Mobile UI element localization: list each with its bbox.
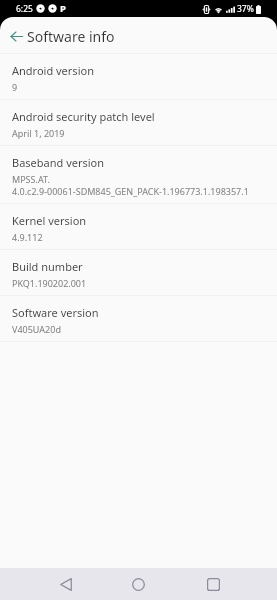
- button[interactable]: Back: [48, 568, 83, 600]
- staticText: 37%: [237, 3, 254, 15]
- staticText: Android version: [12, 63, 94, 78]
- staticText: Software info: [27, 27, 115, 46]
- staticText: P: [60, 2, 66, 15]
- staticText: 9: [12, 81, 18, 93]
- button[interactable]: Navigate up: [0, 17, 32, 53]
- staticText: V405UA20d: [12, 323, 61, 335]
- staticText: Software version: [12, 305, 99, 320]
- button[interactable]: Build number: [0, 250, 277, 295]
- button[interactable]: Android version: [0, 54, 277, 99]
- staticText: April 1, 2019: [12, 127, 65, 139]
- staticText: Android security patch level: [12, 109, 155, 124]
- staticText: 4.0.c2.9-00061-SDM845_GEN_PACK-1.196773.…: [12, 185, 249, 197]
- staticText: 6:25: [16, 3, 33, 15]
- button[interactable]: Home: [121, 568, 156, 600]
- staticText: Baseband version: [12, 155, 105, 170]
- button[interactable]: Software version: [0, 296, 277, 341]
- button[interactable]: Android security patch level: [0, 100, 277, 145]
- staticText: Build number: [12, 259, 83, 274]
- staticText: Kernel version: [12, 213, 87, 228]
- button[interactable]: Baseband version: [0, 146, 277, 203]
- button[interactable]: Recent apps: [196, 568, 231, 600]
- staticText: PKQ1.190202.001: [12, 277, 87, 289]
- button[interactable]: Kernel version: [0, 204, 277, 249]
- staticText: MPSS.AT.: [12, 173, 50, 185]
- staticText: 4.9.112: [12, 231, 43, 243]
